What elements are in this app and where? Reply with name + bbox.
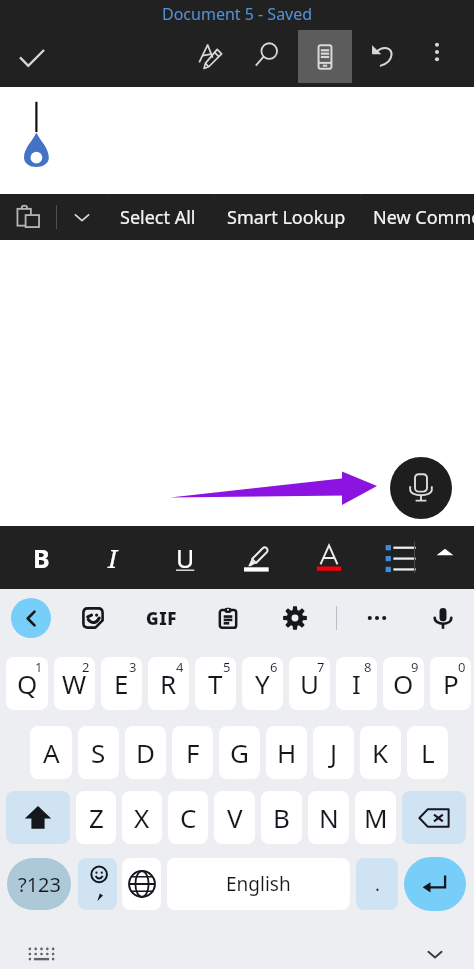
button[interactable]: S (78, 726, 119, 779)
button[interactable]: Paste options (57, 194, 107, 240)
staticText: B (33, 541, 50, 575)
button[interactable]: Q (6, 657, 48, 710)
button[interactable]: Smart Lookup (214, 194, 360, 240)
button[interactable]: Dictate (390, 457, 452, 519)
button[interactable]: GIF (143, 602, 181, 634)
staticText: ?123 (18, 871, 61, 898)
button[interactable]: U (289, 657, 330, 710)
staticText: L (421, 735, 435, 770)
staticText: Smart Lookup (227, 205, 360, 230)
button[interactable]: Settings (275, 598, 315, 638)
staticText: T (208, 666, 223, 701)
button[interactable]: Bold (5, 526, 77, 589)
button[interactable]: Search (240, 28, 294, 82)
staticText: Y (255, 666, 270, 701)
button[interactable]: Undo (356, 28, 410, 82)
button[interactable]: A (30, 726, 72, 779)
button[interactable]: . (356, 858, 398, 910)
staticText: 7 (317, 658, 325, 676)
staticText: C (180, 800, 197, 835)
button[interactable]: Highlight (221, 526, 293, 589)
staticText: Z (89, 800, 104, 835)
button[interactable]: English (167, 858, 350, 910)
button[interactable]: N (308, 791, 349, 844)
staticText: J (330, 735, 338, 770)
staticText: 1 (35, 658, 43, 676)
button[interactable]: Draw (184, 28, 238, 82)
button[interactable]: Shift (6, 791, 70, 844)
button[interactable]: Backspace (402, 791, 466, 844)
button[interactable]: Enter (404, 857, 466, 911)
button[interactable]: K (360, 726, 401, 779)
button[interactable]: V (214, 791, 255, 844)
staticText: A (43, 735, 60, 770)
button[interactable]: New Comment (360, 194, 474, 240)
button[interactable]: Font colour (293, 526, 365, 589)
button[interactable]: Emoji (78, 858, 117, 910)
button[interactable]: Clipboard (208, 598, 248, 638)
button[interactable]: C (168, 791, 208, 844)
staticText: 3 (129, 658, 137, 676)
staticText: New Comment (373, 205, 474, 230)
button[interactable]: L (407, 726, 448, 779)
staticText: I (108, 541, 118, 575)
staticText: G (230, 735, 249, 770)
button[interactable]: Mobile view (298, 30, 352, 83)
staticText: U (300, 666, 320, 701)
button[interactable]: Select All (107, 194, 214, 240)
staticText: English (226, 871, 291, 897)
button[interactable]: Change language (122, 858, 161, 910)
button[interactable]: Italic (77, 526, 149, 589)
button[interactable]: More options (413, 28, 461, 76)
staticText: K (372, 735, 389, 770)
button[interactable]: Collapse toolbar (419, 526, 471, 578)
button[interactable]: Hide keyboard (417, 936, 453, 969)
button[interactable]: P (430, 657, 471, 710)
button[interactable]: Underline (149, 526, 221, 589)
button[interactable]: X (122, 791, 162, 844)
staticText: P (443, 666, 459, 701)
button[interactable]: Keyboard settings (20, 939, 62, 969)
button[interactable]: E (101, 657, 142, 710)
staticText: S (91, 735, 106, 770)
staticText: O (393, 666, 414, 701)
staticText: D (136, 735, 155, 770)
button[interactable]: T (195, 657, 236, 710)
staticText: N (319, 800, 339, 835)
staticText: W (62, 666, 87, 701)
staticText: Document 5 - Saved (162, 3, 313, 25)
staticText: GIF (146, 607, 178, 630)
staticText: F (186, 735, 200, 770)
staticText: 5 (223, 658, 231, 676)
button[interactable]: I (336, 657, 377, 710)
staticText: 8 (364, 658, 372, 676)
button[interactable]: O (383, 657, 424, 710)
staticText: V (227, 800, 243, 835)
button[interactable]: R (148, 657, 189, 710)
button[interactable]: Z (76, 791, 116, 844)
button[interactable]: F (172, 726, 213, 779)
staticText: B (273, 800, 290, 835)
button[interactable]: D (125, 726, 166, 779)
button[interactable]: B (261, 791, 302, 844)
button[interactable]: J (313, 726, 354, 779)
button[interactable]: Bullet list (364, 526, 436, 589)
staticText: 4 (176, 658, 184, 676)
button[interactable]: Back (11, 598, 51, 638)
staticText: U (176, 541, 195, 575)
staticText: 0 (458, 658, 466, 676)
button[interactable]: More options (357, 598, 397, 638)
button[interactable]: G (219, 726, 260, 779)
button[interactable]: Stickers (73, 598, 113, 638)
button[interactable]: Done (1, 28, 63, 87)
staticText: 9 (411, 658, 419, 676)
staticText: E (114, 666, 129, 701)
button[interactable]: H (266, 726, 307, 779)
button[interactable]: W (54, 657, 95, 710)
button[interactable]: M (355, 791, 396, 844)
button[interactable]: Paste (0, 194, 56, 240)
staticText: 2 (82, 658, 90, 676)
button[interactable]: Voice input (423, 598, 463, 638)
button[interactable]: Y (242, 657, 283, 710)
button[interactable]: ?123 (7, 858, 71, 910)
